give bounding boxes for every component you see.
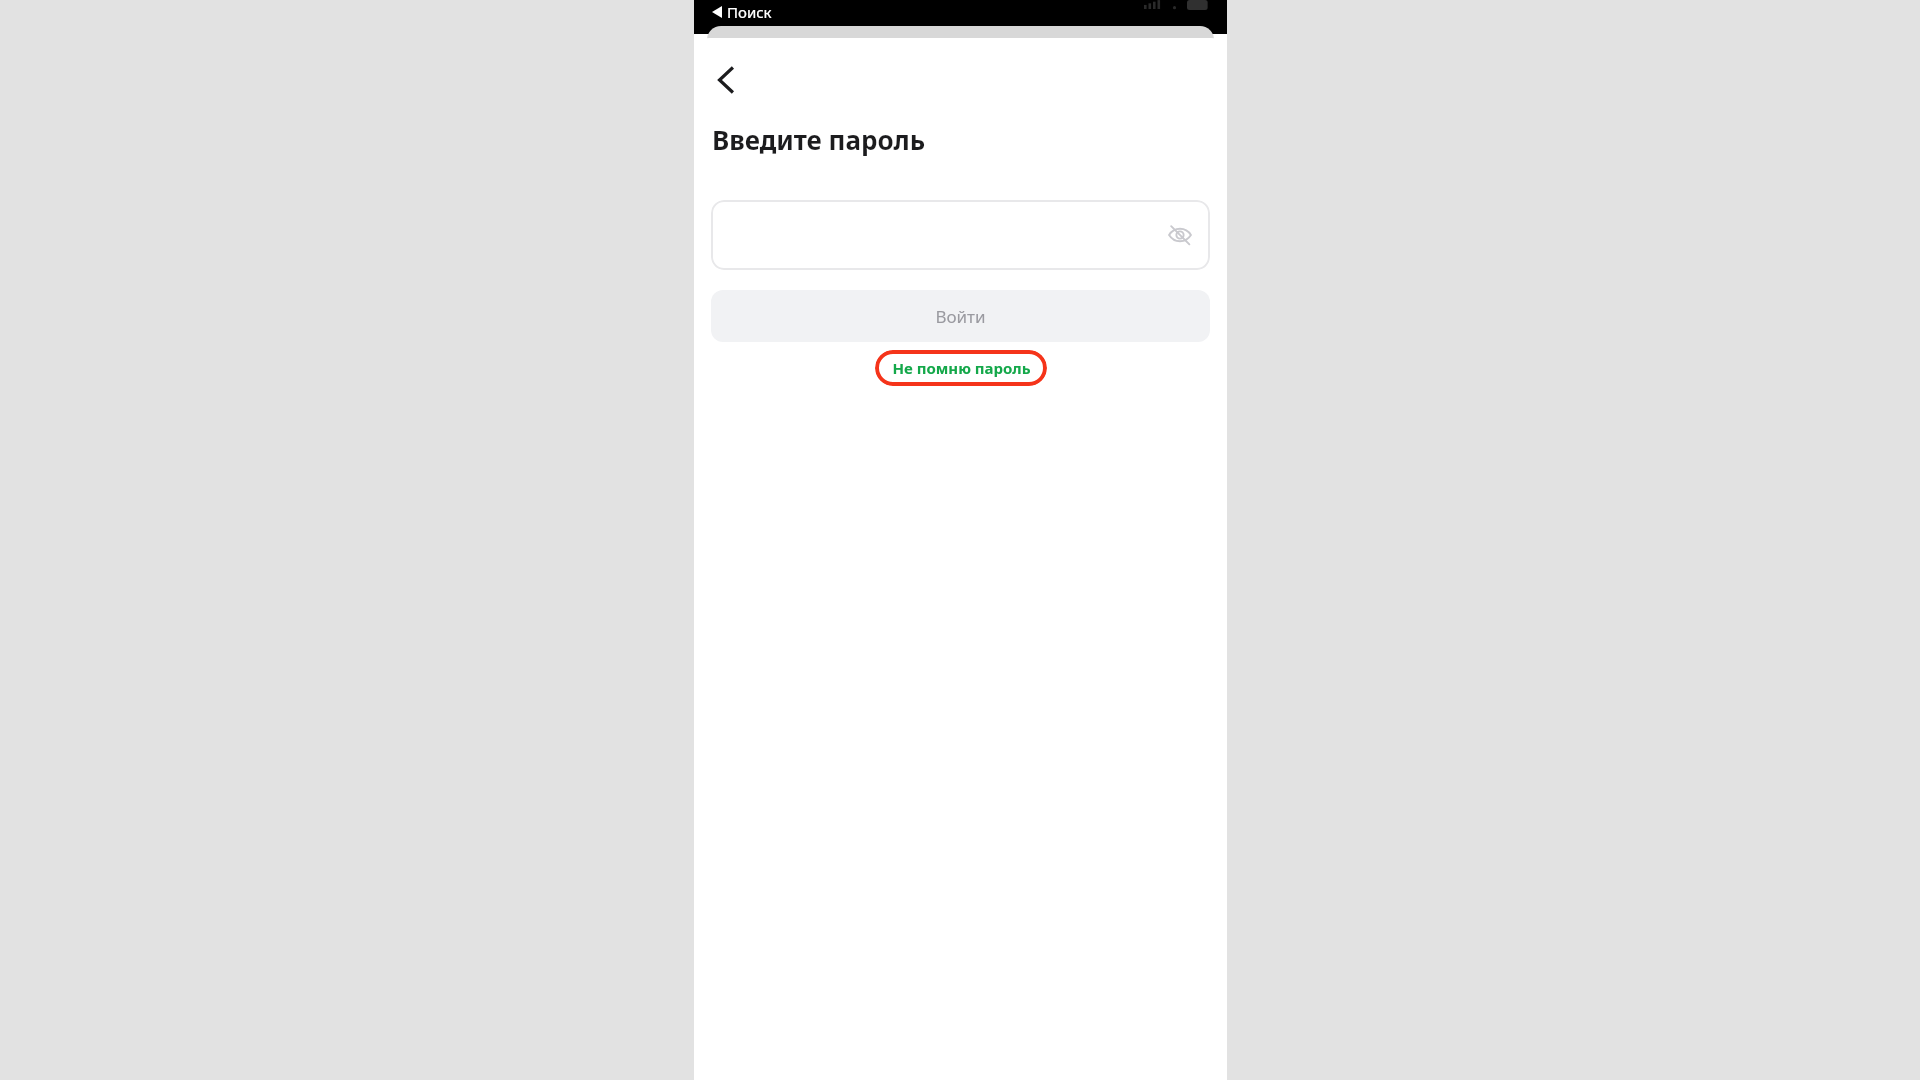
button[interactable]: Войти bbox=[711, 290, 1210, 342]
staticText: Войти bbox=[935, 305, 986, 328]
staticText: Не помню пароль bbox=[892, 358, 1031, 378]
staticText: Введите пароль bbox=[712, 122, 926, 157]
button[interactable]: Back bbox=[702, 56, 750, 104]
button[interactable]: Не помню пароль bbox=[875, 350, 1047, 386]
button[interactable]: Show password bbox=[711, 200, 1210, 270]
button[interactable]: Show password bbox=[1158, 213, 1202, 257]
staticText: Поиск bbox=[727, 2, 772, 22]
